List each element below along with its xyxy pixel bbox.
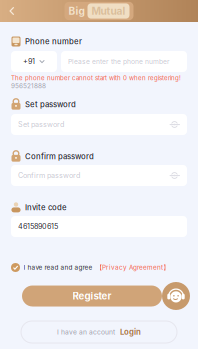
button[interactable]: I have an account [21,321,177,343]
button[interactable]: I have read and agree [11,261,187,274]
button[interactable]: Register [22,285,162,306]
staticText: I have an account [57,328,115,336]
staticText: I have read and agree [23,264,92,271]
staticText: Mutual [91,5,125,17]
button[interactable]: Customer service [162,282,190,310]
staticText: 【Privacy Agreement】 [96,263,169,272]
staticText: Phone number [25,37,82,46]
button[interactable]: 4615890615 [11,216,187,237]
button[interactable]: Set password [11,114,187,135]
staticText: Please enter the phone number [68,57,170,66]
staticText: Register [72,290,111,302]
staticText: +91 [23,57,35,66]
button[interactable]: Back [4,1,20,21]
staticText: Confirm password [18,171,80,180]
staticText: Big [68,5,84,17]
staticText: Set password [18,120,64,129]
staticText: Confirm password [25,152,94,161]
staticText: Set password [25,100,76,109]
button[interactable]: Confirm password [11,165,187,186]
staticText: Invite code [25,203,67,212]
button[interactable]: +91 [11,51,57,72]
staticText: 956521888 [11,82,46,90]
button[interactable]: Please enter the phone number [61,51,187,72]
staticText: 4615890615 [18,222,58,231]
staticText: The phone number cannot start with 0 whe… [11,74,181,82]
staticText: Login [120,327,141,337]
